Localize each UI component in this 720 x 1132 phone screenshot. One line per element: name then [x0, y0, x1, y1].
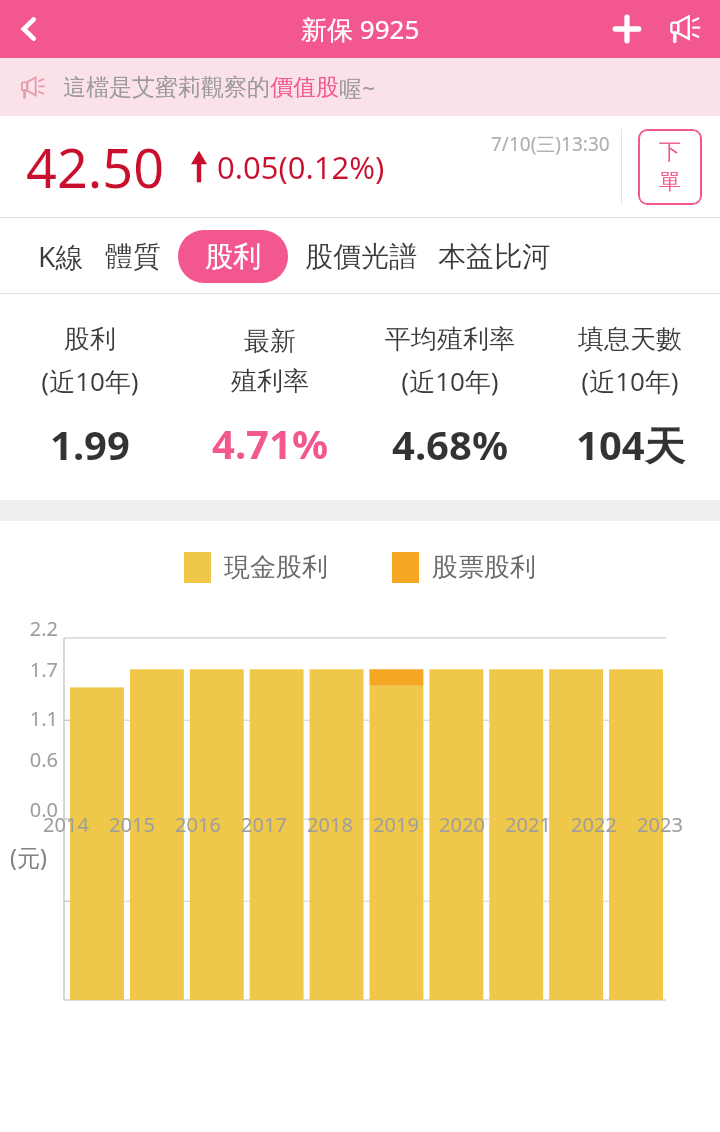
staticText: 0.05(0.12%)	[217, 146, 385, 188]
button[interactable]: Back	[0, 0, 58, 58]
staticText: 2014	[33, 811, 99, 838]
staticText: 填息天數	[578, 323, 682, 356]
staticText: 現金股利	[224, 551, 328, 584]
staticText: 股價光譜	[305, 239, 417, 274]
button[interactable]: 股票股利	[392, 551, 536, 584]
staticText: 價值股	[270, 73, 339, 102]
staticText: 2015	[99, 811, 165, 838]
button[interactable]: 股利	[0, 323, 180, 471]
staticText: (元)	[10, 841, 47, 872]
staticText: 2017	[231, 811, 297, 838]
staticText: 0.0	[4, 796, 58, 823]
staticText: 股利	[205, 239, 261, 274]
staticText: 2.2	[4, 615, 58, 642]
button[interactable]: K線	[34, 227, 88, 285]
button[interactable]: Add to watchlist	[598, 0, 656, 58]
button[interactable]: 股利	[178, 230, 288, 283]
staticText: (近10年)	[581, 363, 679, 399]
staticText: 1.1	[4, 705, 58, 732]
staticText: K線	[38, 237, 84, 275]
staticText: 平均殖利率	[385, 323, 515, 356]
staticText: 1.7	[4, 656, 58, 683]
staticText: 最新	[244, 325, 296, 358]
button[interactable]: 這檔是艾蜜莉觀察的	[0, 58, 720, 116]
button[interactable]: Announcements	[656, 0, 716, 58]
staticText: 2016	[165, 811, 231, 838]
staticText: 下	[659, 138, 681, 166]
staticText: 單	[659, 168, 681, 196]
staticText: 7/10(三)13:30	[491, 131, 610, 157]
button[interactable]: 填息天數	[540, 323, 720, 472]
button[interactable]: 本益比河	[434, 229, 554, 284]
staticText: 4.68%	[392, 417, 508, 471]
staticText: 股利	[64, 323, 116, 356]
staticText: 殖利率	[231, 365, 309, 398]
staticText: 股票股利	[432, 551, 536, 584]
staticText: 喔~	[339, 72, 376, 103]
button[interactable]: 股價光譜	[301, 229, 421, 284]
staticText: 2018	[297, 811, 363, 838]
staticText: 0.6	[4, 746, 58, 773]
staticText: (近10年)	[41, 363, 139, 399]
button[interactable]: 現金股利	[184, 551, 328, 584]
button[interactable]: 平均殖利率	[360, 323, 540, 471]
staticText: 2022	[561, 811, 627, 838]
staticText: 本益比河	[438, 239, 550, 274]
staticText: 2021	[495, 811, 561, 838]
staticText: 這檔是艾蜜莉觀察的	[63, 73, 270, 102]
staticText: 2019	[363, 811, 429, 838]
staticText: 4.71%	[212, 416, 328, 470]
staticText: 2020	[429, 811, 495, 838]
staticText: 104天	[576, 417, 685, 472]
staticText: 2023	[627, 811, 693, 838]
button[interactable]: 體質	[101, 229, 165, 284]
staticText: 體質	[105, 239, 161, 274]
staticText: 1.99	[50, 417, 130, 471]
button[interactable]: 下	[638, 129, 702, 205]
staticText: (近10年)	[401, 363, 499, 399]
staticText: 新保 9925	[301, 11, 420, 47]
button[interactable]: 最新	[180, 325, 360, 470]
staticText: 42.50	[26, 130, 165, 204]
